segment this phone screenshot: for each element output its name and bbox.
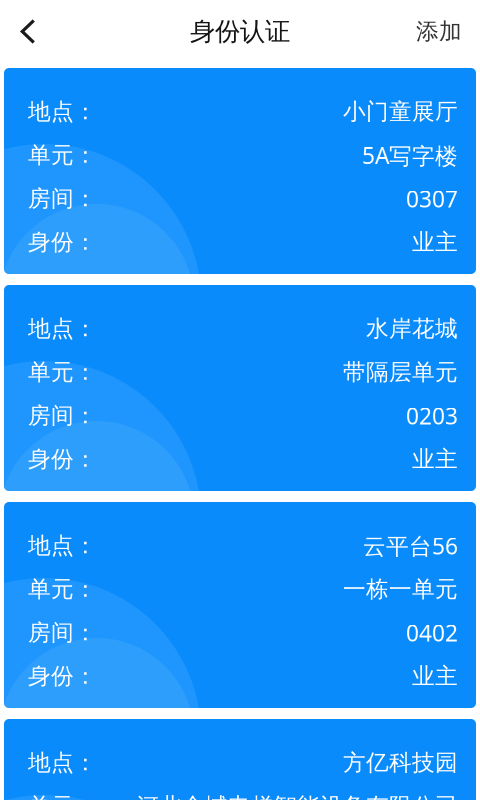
staticText: 业主 [412,445,458,473]
staticText: 单元： [28,575,97,603]
button[interactable]: 地点： [4,285,476,491]
staticText: 地点： [28,749,97,777]
staticText: 身份： [28,445,97,473]
staticText: 一栋一单元 [343,575,458,603]
button[interactable]: Back [0,5,56,57]
staticText: 地点： [28,532,97,560]
staticText: 单元： [28,141,97,169]
staticText: 方亿科技园 [343,749,458,777]
button[interactable]: 地点： [4,502,476,708]
staticText: 云平台56 [363,531,458,561]
button[interactable]: 地点： [4,68,476,274]
button[interactable]: 地点： [4,719,476,800]
staticText: 水岸花城 [366,315,458,343]
staticText: 身份： [28,228,97,256]
staticText: 带隔层单元 [343,358,458,386]
staticText: 身份认证 [190,16,290,47]
staticText: 地点： [28,98,97,126]
button[interactable]: 添加 [398,5,480,57]
staticText: 添加 [416,18,462,45]
staticText: 业主 [412,662,458,690]
staticText: 业主 [412,228,458,256]
staticText: 单元： [28,358,97,386]
staticText: 0402 [406,618,458,648]
staticText: 5A写字楼 [362,140,458,170]
staticText: 房间： [28,185,97,213]
staticText: 0307 [406,184,458,214]
staticText: 身份： [28,662,97,690]
staticText: 0203 [406,401,458,431]
staticText: 房间： [28,402,97,430]
staticText: 河北金域电梯智能设备有限公司 [136,792,458,800]
staticText: 小门童展厅 [343,98,458,126]
staticText: 地点： [28,315,97,343]
staticText: 单元： [28,792,97,800]
staticText: 房间： [28,619,97,647]
